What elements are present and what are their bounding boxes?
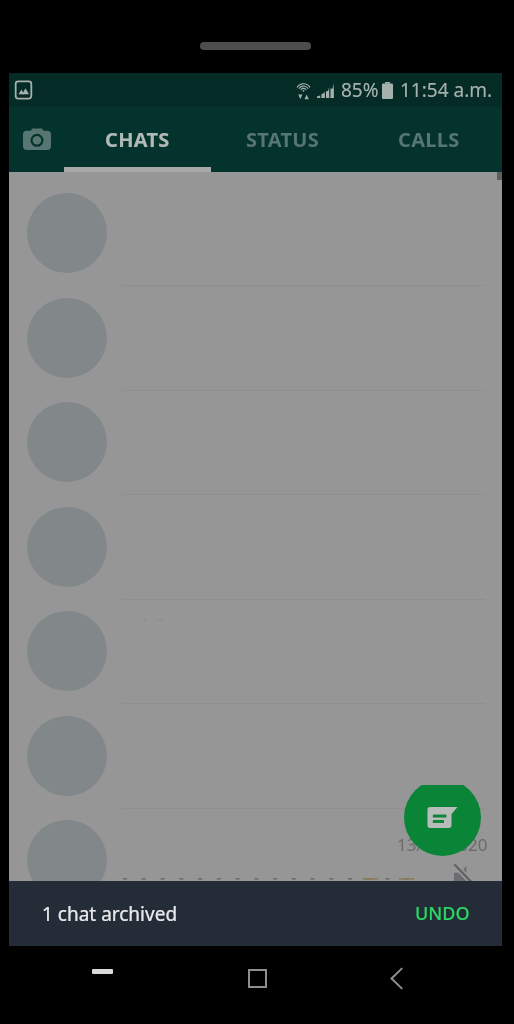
button[interactable]: Home [249, 970, 266, 987]
button[interactable] [27, 820, 107, 900]
button[interactable]: Recent apps [92, 969, 113, 974]
staticText: 85% [341, 77, 379, 103]
button[interactable]: Back [390, 967, 403, 990]
staticText: 11:54 a.m. [400, 77, 493, 103]
button[interactable] [27, 402, 107, 482]
staticText: CHATS [105, 126, 170, 153]
staticText: 1 chat archived [42, 901, 178, 927]
staticText: 13/12/2020 [397, 833, 488, 856]
button[interactable] [27, 193, 107, 273]
button[interactable] [27, 716, 107, 796]
button[interactable]: CALLS [356, 107, 502, 172]
staticText: STATUS [246, 126, 320, 153]
button[interactable]: Camera [9, 107, 65, 172]
button[interactable]: UNDO [401, 889, 484, 938]
button[interactable] [27, 298, 107, 378]
staticText: CALLS [398, 126, 460, 153]
staticText: UNDO [415, 901, 470, 926]
button[interactable]: New chat [404, 785, 481, 856]
button[interactable] [27, 507, 107, 587]
button[interactable]: CHATS [65, 107, 210, 172]
button[interactable] [27, 611, 107, 691]
button[interactable]: STATUS [210, 107, 356, 172]
